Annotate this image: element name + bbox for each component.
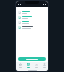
button[interactable]: Tasks xyxy=(24,62,32,69)
button[interactable]: Item icon xyxy=(16,15,48,20)
button[interactable]: Profile xyxy=(40,62,48,69)
button[interactable]: Item icon xyxy=(16,20,48,25)
other: Item icon xyxy=(18,26,21,29)
button[interactable]: Home xyxy=(16,62,24,69)
button[interactable]: Stats xyxy=(32,62,40,69)
other: Item icon xyxy=(18,21,21,24)
button[interactable]: Item icon xyxy=(16,25,48,30)
other: Item icon xyxy=(18,11,21,14)
other: Item icon xyxy=(18,16,21,19)
button[interactable] xyxy=(18,57,46,61)
button[interactable]: Item icon xyxy=(16,10,48,15)
